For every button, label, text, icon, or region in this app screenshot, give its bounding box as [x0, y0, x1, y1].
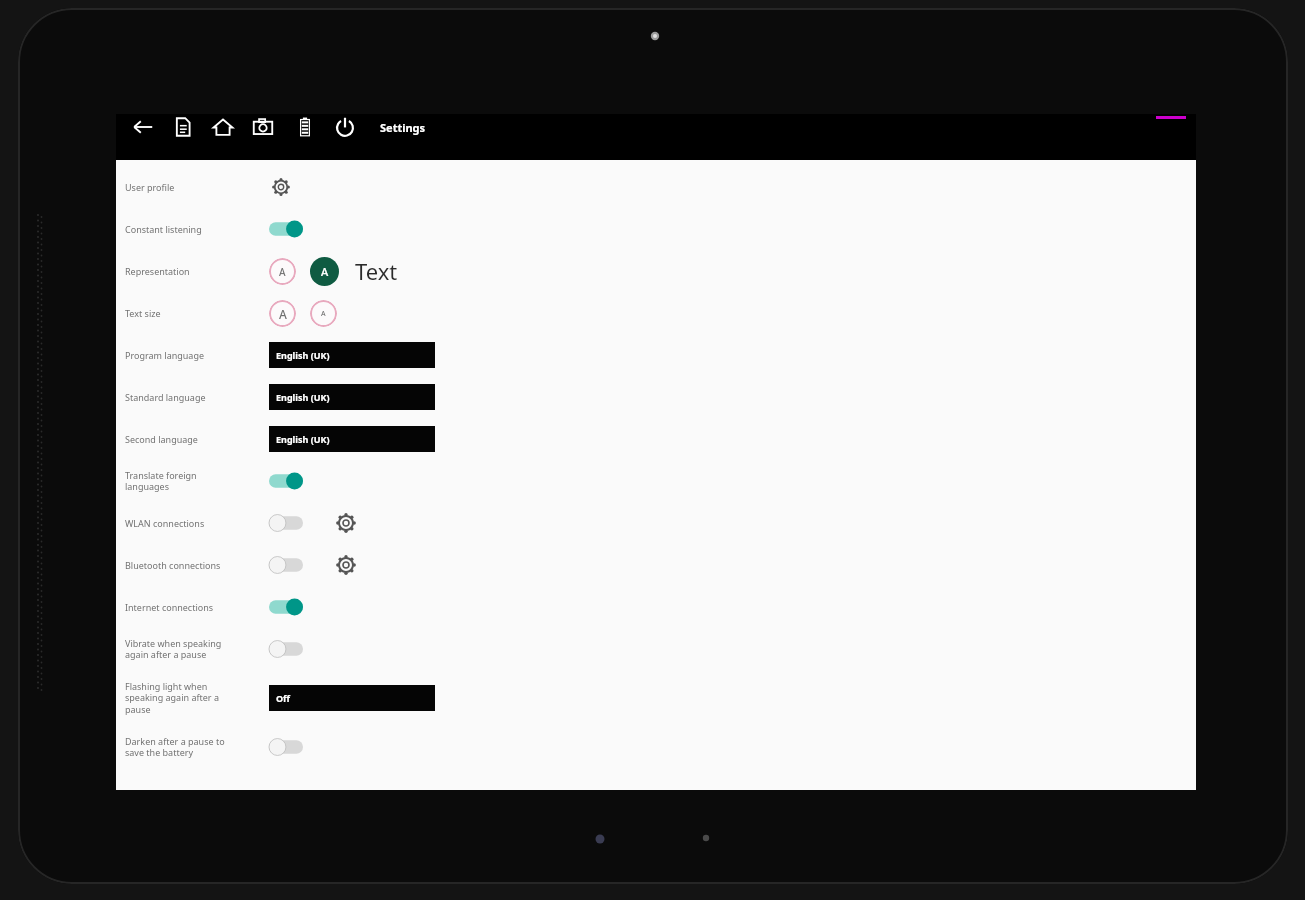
button[interactable]: A	[269, 300, 296, 327]
button[interactable]: A	[310, 300, 337, 327]
button[interactable]: Translate foreign languages	[116, 460, 1196, 502]
button[interactable]: Settings	[333, 552, 359, 578]
staticText: Settings	[380, 120, 426, 135]
staticText: Program language	[125, 349, 204, 361]
staticText: User profile	[125, 181, 175, 193]
button[interactable]: English (UK)	[269, 342, 435, 368]
staticText: A	[279, 265, 286, 279]
staticText: Text	[355, 256, 398, 286]
button[interactable]: English (UK)	[269, 384, 435, 410]
staticText: A	[279, 306, 287, 322]
staticText: Translate foreign languages	[125, 469, 197, 493]
staticText: Standard language	[125, 391, 206, 403]
button[interactable]: WLAN connections	[116, 502, 1196, 544]
button[interactable]: A	[310, 257, 339, 286]
staticText: Darken after a pause to save the battery	[125, 735, 225, 759]
button[interactable]: Flashing light when speaking again after…	[116, 670, 1196, 726]
button[interactable]: User profile	[116, 166, 1196, 208]
button[interactable]: On	[269, 598, 303, 616]
button[interactable]: Representation	[116, 250, 1196, 292]
button[interactable]: On	[269, 472, 303, 490]
button[interactable]: Off	[269, 640, 303, 658]
staticText: A	[321, 264, 329, 279]
staticText: WLAN connections	[125, 517, 205, 529]
button[interactable]: Home	[210, 114, 236, 140]
button[interactable]: Second language	[116, 418, 1196, 460]
button[interactable]: Off	[269, 556, 303, 574]
button[interactable]: A	[269, 258, 296, 285]
staticText: English (UK)	[276, 433, 330, 445]
button[interactable]: Camera	[250, 114, 276, 140]
button[interactable]: Off	[269, 685, 435, 711]
staticText: Internet connections	[125, 601, 214, 613]
button[interactable]: Settings	[333, 510, 359, 536]
staticText: Constant listening	[125, 223, 202, 235]
button[interactable]: Bluetooth connections	[116, 544, 1196, 586]
staticText: Text size	[125, 307, 161, 319]
button[interactable]: Constant listening	[116, 208, 1196, 250]
staticText: Bluetooth connections	[125, 559, 221, 571]
button[interactable]: Back	[130, 114, 156, 140]
button[interactable]: Darken after a pause to save the battery	[116, 726, 1196, 768]
button[interactable]: Off	[269, 514, 303, 532]
staticText: Representation	[125, 265, 190, 277]
button[interactable]: Power	[332, 114, 358, 140]
button[interactable]: On	[269, 220, 303, 238]
button[interactable]: Standard language	[116, 376, 1196, 418]
staticText: Flashing light when speaking again after…	[125, 680, 219, 716]
button[interactable]: Text size	[116, 292, 1196, 334]
button[interactable]: Program language	[116, 334, 1196, 376]
button[interactable]: Document	[170, 114, 196, 140]
staticText: Vibrate when speaking again after a paus…	[125, 637, 222, 661]
button[interactable]: Settings	[269, 175, 293, 199]
staticText: A	[321, 309, 326, 319]
staticText: English (UK)	[276, 349, 330, 361]
button[interactable]: Off	[269, 738, 303, 756]
button[interactable]: Battery	[292, 114, 318, 140]
staticText: Off	[276, 692, 291, 704]
staticText: Second language	[125, 433, 198, 445]
button[interactable]: English (UK)	[269, 426, 435, 452]
button[interactable]: Vibrate when speaking again after a paus…	[116, 628, 1196, 670]
staticText: English (UK)	[276, 391, 330, 403]
button[interactable]: Internet connections	[116, 586, 1196, 628]
